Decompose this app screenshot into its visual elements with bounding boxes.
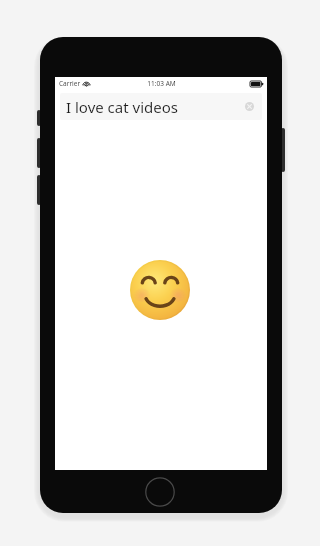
staticText: 11:03 AM — [147, 79, 176, 88]
staticText: Carrier — [59, 79, 81, 88]
staticText: I love cat videos — [66, 97, 178, 117]
other: Smiling face with smiling eyes — [130, 260, 190, 320]
button[interactable]: I love cat videos — [60, 93, 262, 120]
button[interactable]: Clear text — [244, 101, 255, 112]
button[interactable]: Home — [145, 477, 175, 507]
